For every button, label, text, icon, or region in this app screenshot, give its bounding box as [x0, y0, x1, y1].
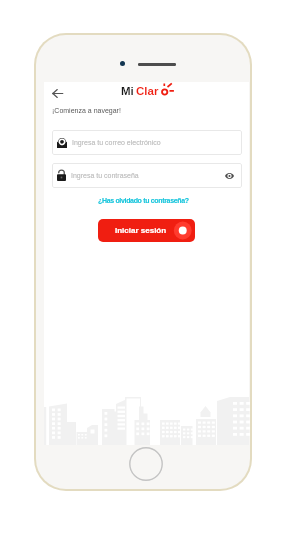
button[interactable]: Ingresa tu correo electrónico — [52, 130, 242, 155]
staticText: Ingresa tu correo electrónico — [72, 139, 161, 147]
staticText: ¡Comienza a navegar! — [52, 107, 121, 115]
staticText: Ingresa tu contraseña — [71, 172, 139, 180]
button[interactable]: Show password — [222, 169, 236, 183]
staticText: Iniciar sesión — [115, 226, 167, 235]
staticText: Clar — [136, 85, 159, 98]
button[interactable]: ¿Has olvidado tu contraseña? — [98, 197, 189, 205]
staticText: Mi — [121, 85, 134, 98]
button[interactable]: Iniciar sesión — [98, 219, 195, 242]
button[interactable]: Back — [48, 84, 66, 102]
button[interactable]: Ingresa tu contraseña — [52, 163, 242, 188]
